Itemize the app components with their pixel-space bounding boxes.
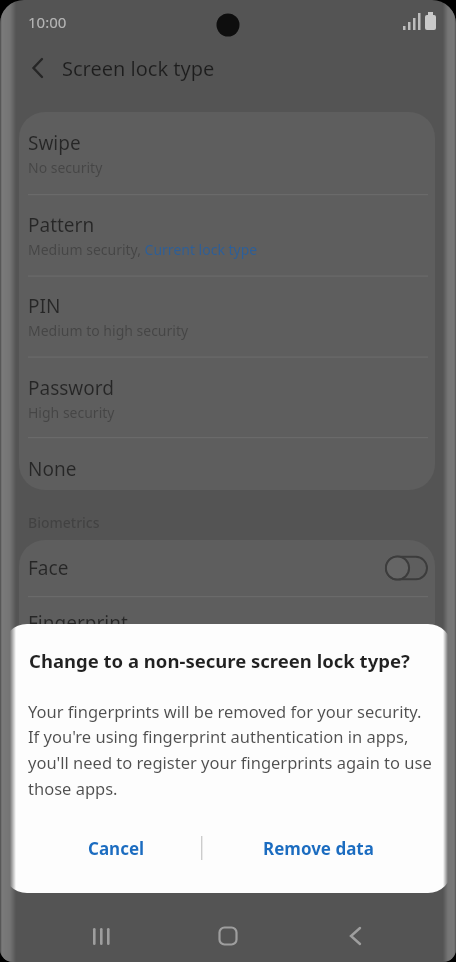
button[interactable] xyxy=(339,920,371,952)
staticText: Swipe xyxy=(28,130,81,156)
staticText: Password xyxy=(28,375,114,401)
staticText: High security xyxy=(28,403,115,422)
button[interactable] xyxy=(22,54,50,82)
staticText: No security xyxy=(28,158,103,177)
button[interactable]: Pattern xyxy=(28,212,428,274)
button[interactable]: Cancel xyxy=(55,820,178,876)
staticText: Change to a non-secure screen lock type? xyxy=(29,648,410,673)
staticText: Remove data xyxy=(263,837,374,860)
staticText: Biometrics xyxy=(28,513,100,532)
button[interactable]: Face xyxy=(28,555,368,597)
staticText: Fingerprint xyxy=(28,610,128,636)
button[interactable]: Remove data xyxy=(238,820,398,876)
staticText: Cancel xyxy=(88,837,145,860)
button[interactable]: Fingerprint xyxy=(28,610,428,665)
button[interactable]: Password xyxy=(28,375,428,437)
staticText: Screen lock type xyxy=(62,55,215,82)
button[interactable]: Swipe xyxy=(28,130,428,192)
staticText: Face xyxy=(28,555,69,581)
button[interactable]: None xyxy=(28,456,428,490)
staticText: Pattern xyxy=(28,212,95,238)
staticText: PIN xyxy=(28,293,61,319)
staticText: Your fingerprints will be removed for yo… xyxy=(28,700,432,800)
staticText: None xyxy=(28,456,77,482)
button[interactable] xyxy=(212,920,244,952)
button[interactable] xyxy=(85,920,117,952)
staticText: Medium security, Current lock type xyxy=(28,240,258,259)
button[interactable] xyxy=(385,556,429,580)
staticText: Medium to high security xyxy=(28,321,189,340)
staticText: 10:00 xyxy=(28,12,67,32)
button[interactable]: PIN xyxy=(28,293,428,355)
